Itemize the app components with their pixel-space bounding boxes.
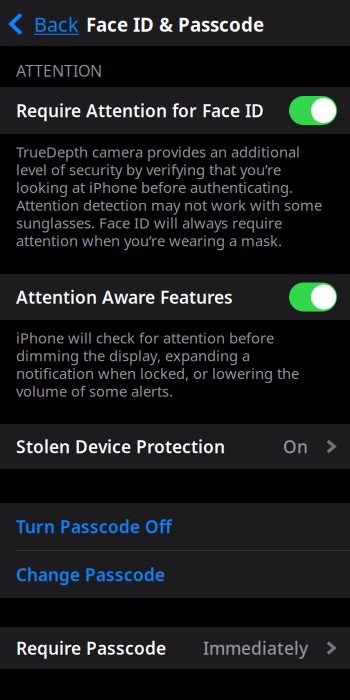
staticText: Immediately (203, 636, 308, 659)
staticText: On (283, 435, 308, 458)
staticText: Attention Aware Features (16, 285, 233, 308)
button[interactable]: Turn Passcode Off (0, 503, 350, 550)
button[interactable]: Attention Aware Features (0, 274, 350, 320)
staticText: Change Passcode (16, 563, 165, 586)
staticText: Require Passcode (16, 636, 166, 659)
staticText: TrueDepth camera provides an additional … (16, 142, 322, 250)
staticText: Require Attention for Face ID (16, 99, 264, 122)
button[interactable]: Require Passcode (0, 627, 350, 669)
button[interactable]: Change Passcode (0, 551, 350, 598)
staticText: Stolen Device Protection (16, 435, 225, 458)
staticText: Back (34, 11, 79, 37)
staticText: ATTENTION (16, 60, 102, 81)
button[interactable]: Require Attention for Face ID (0, 87, 350, 134)
button[interactable]: Back (0, 0, 86, 46)
staticText: Face ID & Passcode (86, 12, 264, 37)
staticText: iPhone will check for attention before d… (16, 328, 299, 401)
staticText: Turn Passcode Off (16, 515, 172, 538)
button[interactable]: Stolen Device Protection (0, 424, 350, 469)
